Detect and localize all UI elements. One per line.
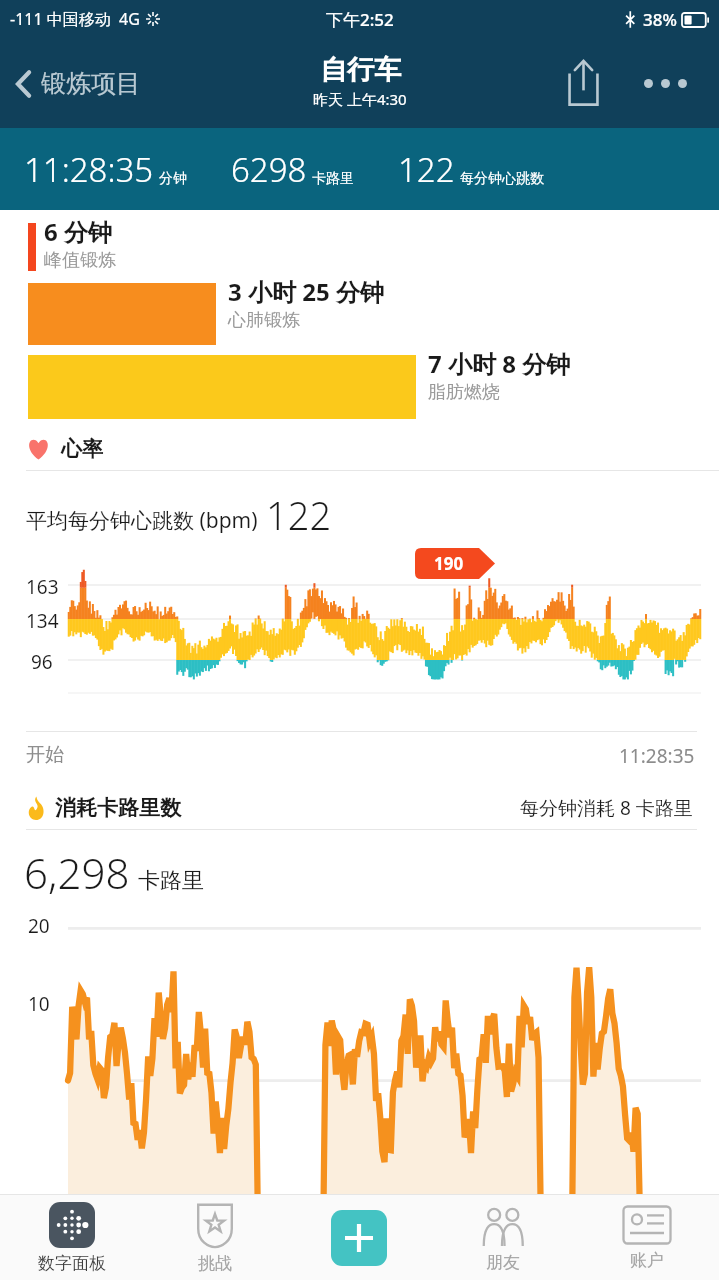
staticText: 11:28:35: [619, 743, 695, 769]
staticText: 数字面板: [38, 1253, 106, 1274]
button[interactable]: Share: [560, 52, 607, 114]
staticText: 下午2:52: [326, 8, 394, 31]
staticText: 每分钟消耗 8 卡路里: [520, 795, 693, 821]
button[interactable]: 心率: [0, 432, 719, 470]
staticText: 峰值锻炼: [44, 249, 116, 272]
staticText: 3 小时 25 分钟: [228, 275, 384, 308]
staticText: 锻炼项目: [41, 68, 141, 99]
staticText: 6 分钟: [44, 215, 112, 248]
staticText: 20: [28, 913, 50, 939]
staticText: 11:28:35: [24, 147, 154, 192]
staticText: 每分钟心跳数: [460, 170, 544, 188]
staticText: 10: [28, 991, 50, 1017]
button[interactable]: 锻炼项目: [12, 60, 145, 107]
staticText: 122: [266, 489, 332, 541]
staticText: 6,298: [24, 844, 130, 901]
staticText: 挑战: [198, 1253, 232, 1274]
staticText: 分钟: [159, 170, 187, 188]
button[interactable]: 账户: [575, 1195, 719, 1280]
staticText: 消耗卡路里数: [55, 795, 181, 821]
staticText: 134: [26, 608, 59, 634]
staticText: 96: [31, 649, 53, 675]
staticText: 账户: [630, 1250, 664, 1271]
button[interactable]: 数字面板: [0, 1195, 143, 1280]
button[interactable]: More options: [634, 69, 697, 98]
button[interactable]: 朋友: [431, 1195, 575, 1280]
button[interactable]: 挑战: [143, 1195, 287, 1280]
staticText: 昨天 上午4:30: [313, 89, 407, 109]
staticText: 190: [434, 552, 464, 575]
staticText: -111 中国移动 4G: [10, 8, 140, 30]
staticText: 卡路里: [138, 867, 204, 895]
staticText: 心肺锻炼: [228, 309, 300, 332]
staticText: 自行车: [320, 53, 401, 87]
staticText: 朋友: [486, 1252, 520, 1273]
staticText: 心率: [61, 436, 103, 462]
staticText: 脂肪燃烧: [428, 381, 500, 404]
staticText: 6298: [231, 147, 307, 192]
staticText: 122: [398, 147, 455, 192]
button[interactable]: Add: [287, 1195, 431, 1280]
staticText: 163: [26, 574, 59, 600]
staticText: 卡路里: [312, 170, 354, 188]
staticText: 平均每分钟心跳数 (bpm): [26, 506, 258, 535]
staticText: 7 小时 8 分钟: [428, 347, 571, 380]
staticText: 开始: [26, 743, 64, 767]
button[interactable]: 消耗卡路里数: [0, 769, 719, 829]
staticText: 38%: [643, 8, 677, 31]
